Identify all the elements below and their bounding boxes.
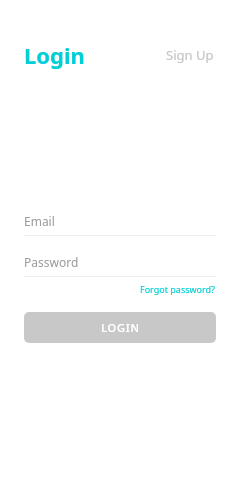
staticText: LOGIN (101, 320, 140, 335)
staticText: Forgot password? (140, 283, 216, 295)
button[interactable]: Login (24, 40, 85, 70)
staticText: Email (24, 213, 55, 229)
staticText: Login (24, 40, 85, 70)
button[interactable]: LOGIN (24, 312, 216, 343)
staticText: Password (24, 254, 79, 270)
button[interactable]: Email (24, 207, 216, 235)
button[interactable]: Password (24, 248, 216, 276)
button[interactable]: Forgot password? (140, 283, 216, 295)
button[interactable]: Sign Up (164, 42, 216, 68)
staticText: Sign Up (166, 46, 214, 64)
